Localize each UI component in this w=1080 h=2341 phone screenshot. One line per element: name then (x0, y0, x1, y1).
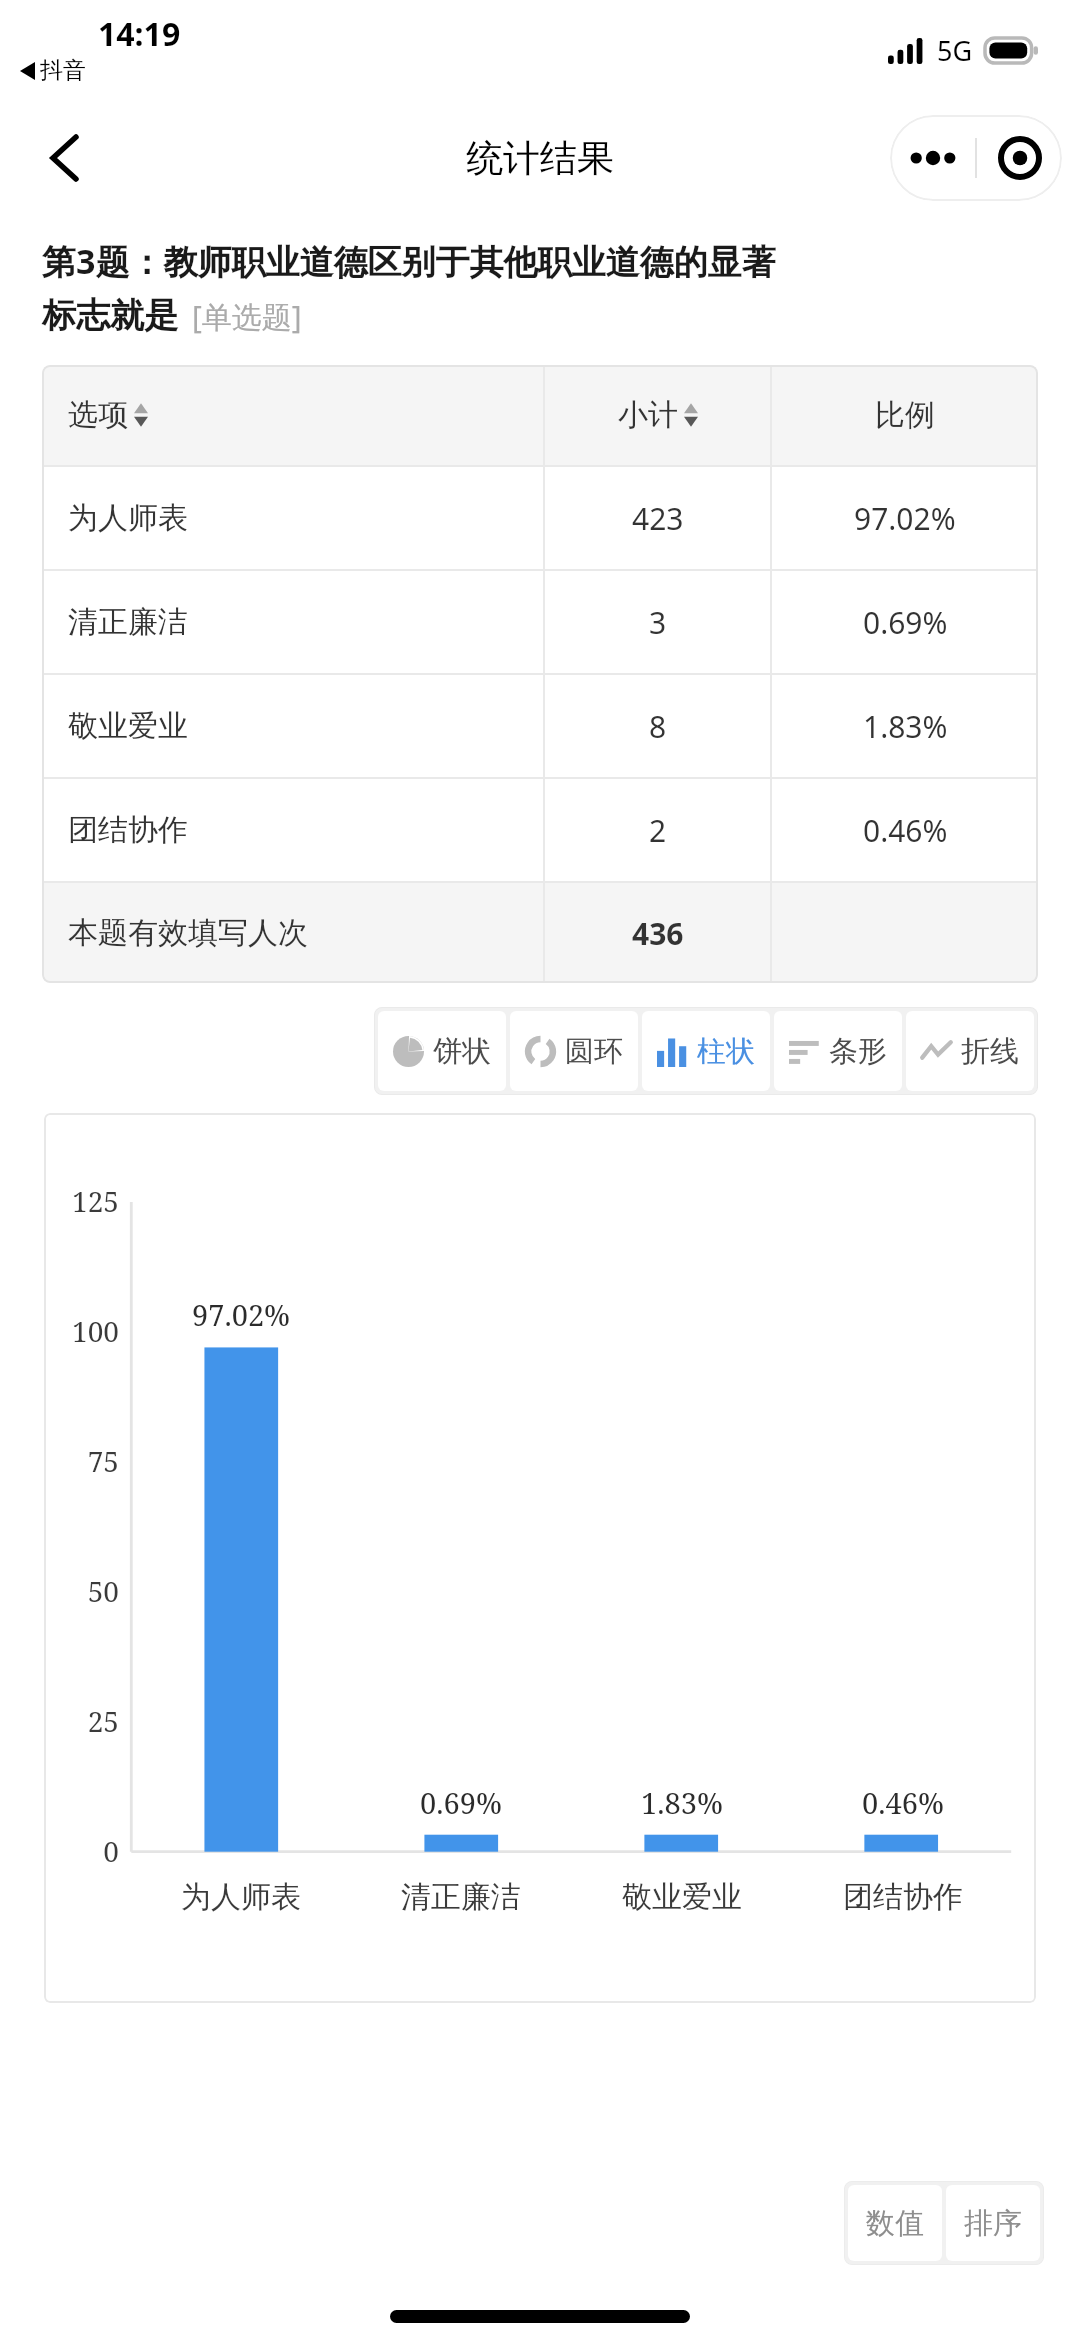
staticText: 0.69% (863, 602, 948, 643)
button[interactable]: 条形 (774, 1011, 902, 1091)
staticText: 436 (632, 913, 684, 954)
staticText: 第3题：教师职业道德区别于其他职业道德的显著 (42, 238, 776, 284)
staticText: 97.02% (854, 498, 956, 539)
button[interactable]: More options (890, 115, 975, 201)
button[interactable]: 圆环 (510, 1011, 638, 1091)
staticText: 清正廉洁 (401, 1878, 521, 1916)
staticText: 0.46% (862, 1783, 944, 1822)
staticText: 团结协作 (68, 811, 188, 849)
staticText: 抖音 (40, 56, 86, 85)
button[interactable]: 排序 (946, 2185, 1040, 2261)
button[interactable]: 数值 (848, 2185, 942, 2261)
staticText: 排序 (964, 2205, 1022, 2242)
button[interactable]: 敬业爱业 (42, 675, 1038, 777)
staticText: 团结协作 (843, 1878, 963, 1916)
staticText: 敬业爱业 (68, 707, 188, 745)
staticText: 75 (44, 1442, 119, 1480)
staticText: 0.69% (420, 1783, 502, 1822)
staticText: 敬业爱业 (622, 1878, 742, 1916)
staticText: 标志就是 (42, 294, 178, 337)
button[interactable]: 饼状 (378, 1011, 506, 1091)
button[interactable]: Back (26, 120, 102, 196)
button[interactable]: 为人师表 (42, 467, 1038, 569)
staticText: 饼状 (433, 1033, 491, 1070)
staticText: 50 (44, 1572, 119, 1610)
staticText: 本题有效填写人次 (68, 914, 308, 952)
staticText: 5G (937, 32, 973, 69)
staticText: 14:19 (98, 12, 181, 56)
staticText: [单选题] (192, 296, 302, 337)
staticText: 选项 (68, 396, 128, 434)
staticText: 423 (632, 498, 684, 539)
staticText: 为人师表 (181, 1878, 301, 1916)
button[interactable]: 折线 (906, 1011, 1034, 1091)
staticText: 清正廉洁 (68, 603, 188, 641)
staticText: 折线 (961, 1033, 1019, 1070)
button[interactable]: 清正廉洁 (42, 571, 1038, 673)
staticText: 125 (44, 1182, 119, 1220)
staticText: 统计结果 (466, 135, 614, 182)
button[interactable]: 团结协作 (42, 779, 1038, 881)
staticText: 小计 (618, 396, 678, 434)
staticText: 1.83% (641, 1783, 723, 1822)
staticText: 3 (649, 602, 667, 643)
button[interactable]: 柱状 (642, 1011, 770, 1091)
staticText: 0.46% (863, 810, 948, 851)
staticText: 0 (44, 1832, 119, 1870)
staticText: 条形 (829, 1033, 887, 1070)
staticText: 柱状 (697, 1033, 755, 1070)
staticText: 比例 (875, 396, 935, 434)
staticText: 为人师表 (68, 499, 188, 537)
staticText: 圆环 (565, 1033, 623, 1070)
staticText: 97.02% (192, 1295, 291, 1334)
staticText: 8 (649, 706, 667, 747)
staticText: 数值 (866, 2205, 924, 2242)
staticText: 25 (44, 1702, 119, 1740)
staticText: 1.83% (863, 706, 948, 747)
staticText: 2 (649, 810, 667, 851)
staticText: 100 (44, 1312, 119, 1350)
button[interactable]: Close (977, 115, 1062, 201)
